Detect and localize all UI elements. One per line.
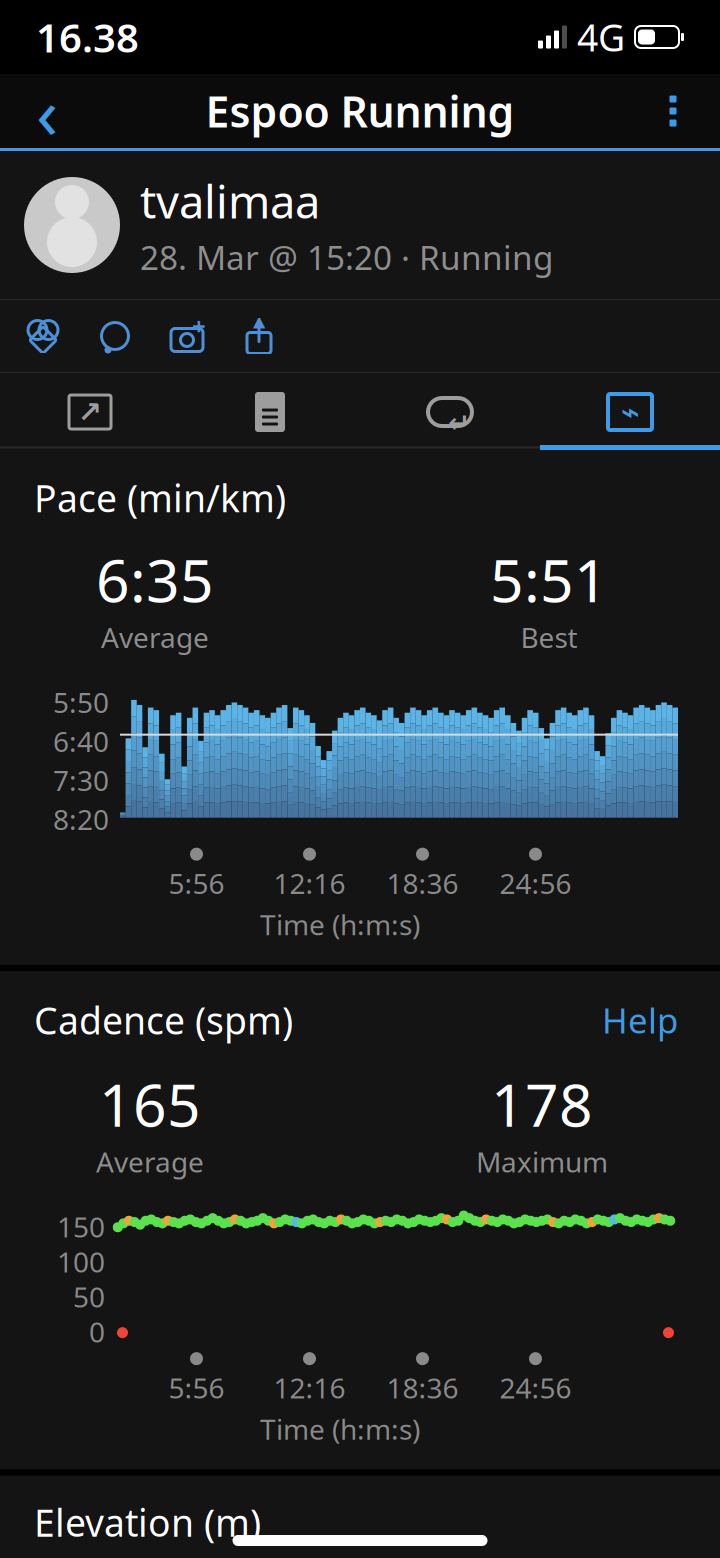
staticText: tvalimaa: [140, 171, 320, 231]
button[interactable]: Like: [18, 309, 68, 363]
staticText: Pace (min/km): [34, 473, 286, 523]
staticText: 5:56: [168, 865, 224, 902]
button[interactable]: Back: [12, 77, 82, 145]
staticText: +: [192, 310, 206, 342]
staticText: 28. Mar @ 15:20 · Running: [140, 235, 554, 279]
button[interactable]: Help: [594, 993, 686, 1047]
button[interactable]: Share: [234, 309, 284, 363]
staticText: 6:35: [96, 541, 214, 618]
staticText: 150: [57, 1208, 105, 1245]
staticText: Cadence (spm): [34, 995, 293, 1045]
button[interactable]: More options: [638, 77, 708, 145]
staticText: Best: [520, 618, 577, 656]
staticText: 5:56: [168, 1369, 224, 1406]
staticText: 5:50: [53, 684, 109, 721]
staticText: 7:30: [53, 762, 109, 799]
staticText: ↵: [448, 408, 470, 438]
staticText: Espoo Running: [205, 83, 514, 139]
staticText: 12:16: [273, 1369, 345, 1406]
staticText: 24:56: [499, 865, 571, 902]
staticText: Time (h:m:s): [260, 1410, 420, 1447]
staticText: 6:40: [53, 723, 109, 760]
button[interactable]: Laps: [360, 374, 540, 450]
staticText: 24:56: [499, 1369, 571, 1406]
staticText: Time (h:m:s): [260, 906, 420, 943]
staticText: 0: [89, 1313, 105, 1350]
staticText: Help: [602, 997, 678, 1043]
staticText: 16.38: [36, 10, 139, 63]
staticText: 12:16: [273, 865, 345, 902]
staticText: 8:20: [53, 801, 109, 838]
staticText: 178: [491, 1065, 593, 1143]
staticText: Average: [96, 1143, 204, 1180]
button[interactable]: Graphs: [540, 374, 720, 450]
staticText: 4G: [577, 12, 625, 62]
staticText: 18:36: [386, 1369, 458, 1406]
staticText: 100: [57, 1243, 105, 1280]
button[interactable]: Map: [0, 374, 180, 450]
button[interactable]: Comment: [90, 309, 140, 363]
staticText: Elevation (m): [34, 1497, 261, 1547]
staticText: ↗: [77, 395, 102, 429]
staticText: ⌁: [620, 394, 639, 430]
staticText: Average: [101, 618, 209, 656]
staticText: 5:51: [490, 541, 608, 618]
staticText: 50: [73, 1278, 105, 1315]
staticText: 165: [99, 1065, 201, 1143]
staticText: Maximum: [476, 1143, 608, 1180]
staticText: ‹: [36, 63, 58, 159]
staticText: 18:36: [386, 865, 458, 902]
button[interactable]: Summary: [180, 374, 360, 450]
button[interactable]: Add photo: [162, 309, 212, 363]
staticText: ▲: [253, 312, 265, 330]
